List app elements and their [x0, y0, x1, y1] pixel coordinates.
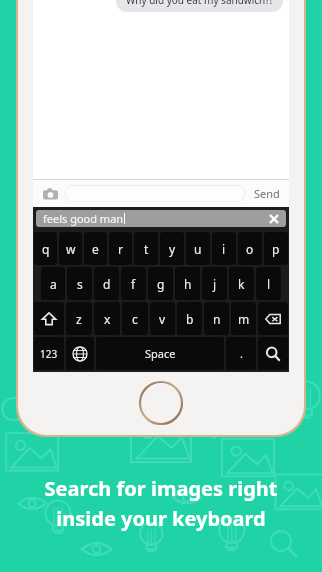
button[interactable] [65, 185, 245, 202]
button[interactable]: l [256, 267, 281, 300]
button[interactable]: r [109, 232, 132, 265]
button[interactable]: p [264, 232, 288, 265]
button[interactable]: b [177, 302, 202, 335]
button[interactable]: Emoji [66, 337, 94, 370]
button[interactable]: s [67, 267, 92, 300]
staticText: x [104, 311, 111, 327]
button[interactable]: i [212, 232, 236, 265]
staticText: Why did you eat my sandwich?! [126, 0, 273, 7]
staticText: r [118, 241, 123, 257]
button[interactable]: Search [258, 337, 288, 370]
other: Home [139, 381, 183, 425]
button[interactable]: u [186, 232, 210, 265]
button[interactable]: m [231, 302, 256, 335]
other: Clear [269, 214, 279, 224]
staticText: w [66, 241, 76, 257]
staticText: y [169, 241, 176, 257]
button[interactable]: Space [96, 337, 224, 370]
staticText: o [246, 241, 254, 257]
staticText: . [240, 346, 243, 361]
button[interactable]: w [59, 232, 82, 265]
button[interactable]: g [148, 267, 173, 300]
staticText: b [186, 311, 194, 327]
staticText: v [159, 311, 166, 327]
button[interactable]: a [41, 267, 65, 300]
button[interactable]: j [202, 267, 227, 300]
button[interactable]: c [122, 302, 148, 335]
staticText: t [144, 241, 149, 257]
button[interactable]: y [160, 232, 184, 265]
button[interactable]: q [34, 232, 57, 265]
staticText: a [50, 276, 57, 292]
staticText: e [92, 241, 99, 257]
staticText: feels good man [43, 211, 124, 226]
staticText: f [131, 276, 136, 292]
button[interactable]: Backspace [258, 302, 288, 335]
button[interactable]: d [94, 267, 119, 300]
button[interactable]: n [204, 302, 229, 335]
staticText: c [132, 311, 138, 327]
staticText: k [238, 276, 245, 292]
staticText: j [213, 276, 217, 292]
button[interactable]: Camera [40, 184, 60, 204]
staticText: d [103, 276, 111, 292]
button[interactable]: . [226, 337, 256, 370]
button[interactable]: Shift [34, 302, 64, 335]
button[interactable]: h [175, 267, 200, 300]
button[interactable]: x [94, 302, 120, 335]
staticText: h [184, 276, 192, 292]
staticText: inside your keyboard [0, 505, 322, 532]
staticText: z [76, 311, 82, 327]
staticText: q [42, 241, 50, 257]
button[interactable]: k [229, 267, 254, 300]
staticText: Send [254, 186, 280, 201]
staticText: p [272, 241, 280, 257]
button[interactable]: feels good man [36, 210, 286, 227]
staticText: n [213, 311, 221, 327]
button[interactable]: f [121, 267, 146, 300]
staticText: m [238, 311, 250, 327]
staticText: l [267, 276, 271, 292]
staticText: 123 [40, 347, 58, 361]
button[interactable]: Send [252, 186, 282, 201]
button[interactable]: v [150, 302, 175, 335]
staticText: i [222, 241, 226, 257]
staticText: Search for images right [0, 475, 322, 502]
button[interactable]: e [84, 232, 107, 265]
button[interactable]: t [134, 232, 158, 265]
staticText: s [77, 276, 83, 292]
button[interactable]: 123 [34, 337, 64, 370]
staticText: g [157, 276, 165, 292]
staticText: u [194, 241, 202, 257]
staticText: Space [145, 346, 176, 361]
button[interactable]: o [238, 232, 262, 265]
button[interactable]: z [66, 302, 92, 335]
